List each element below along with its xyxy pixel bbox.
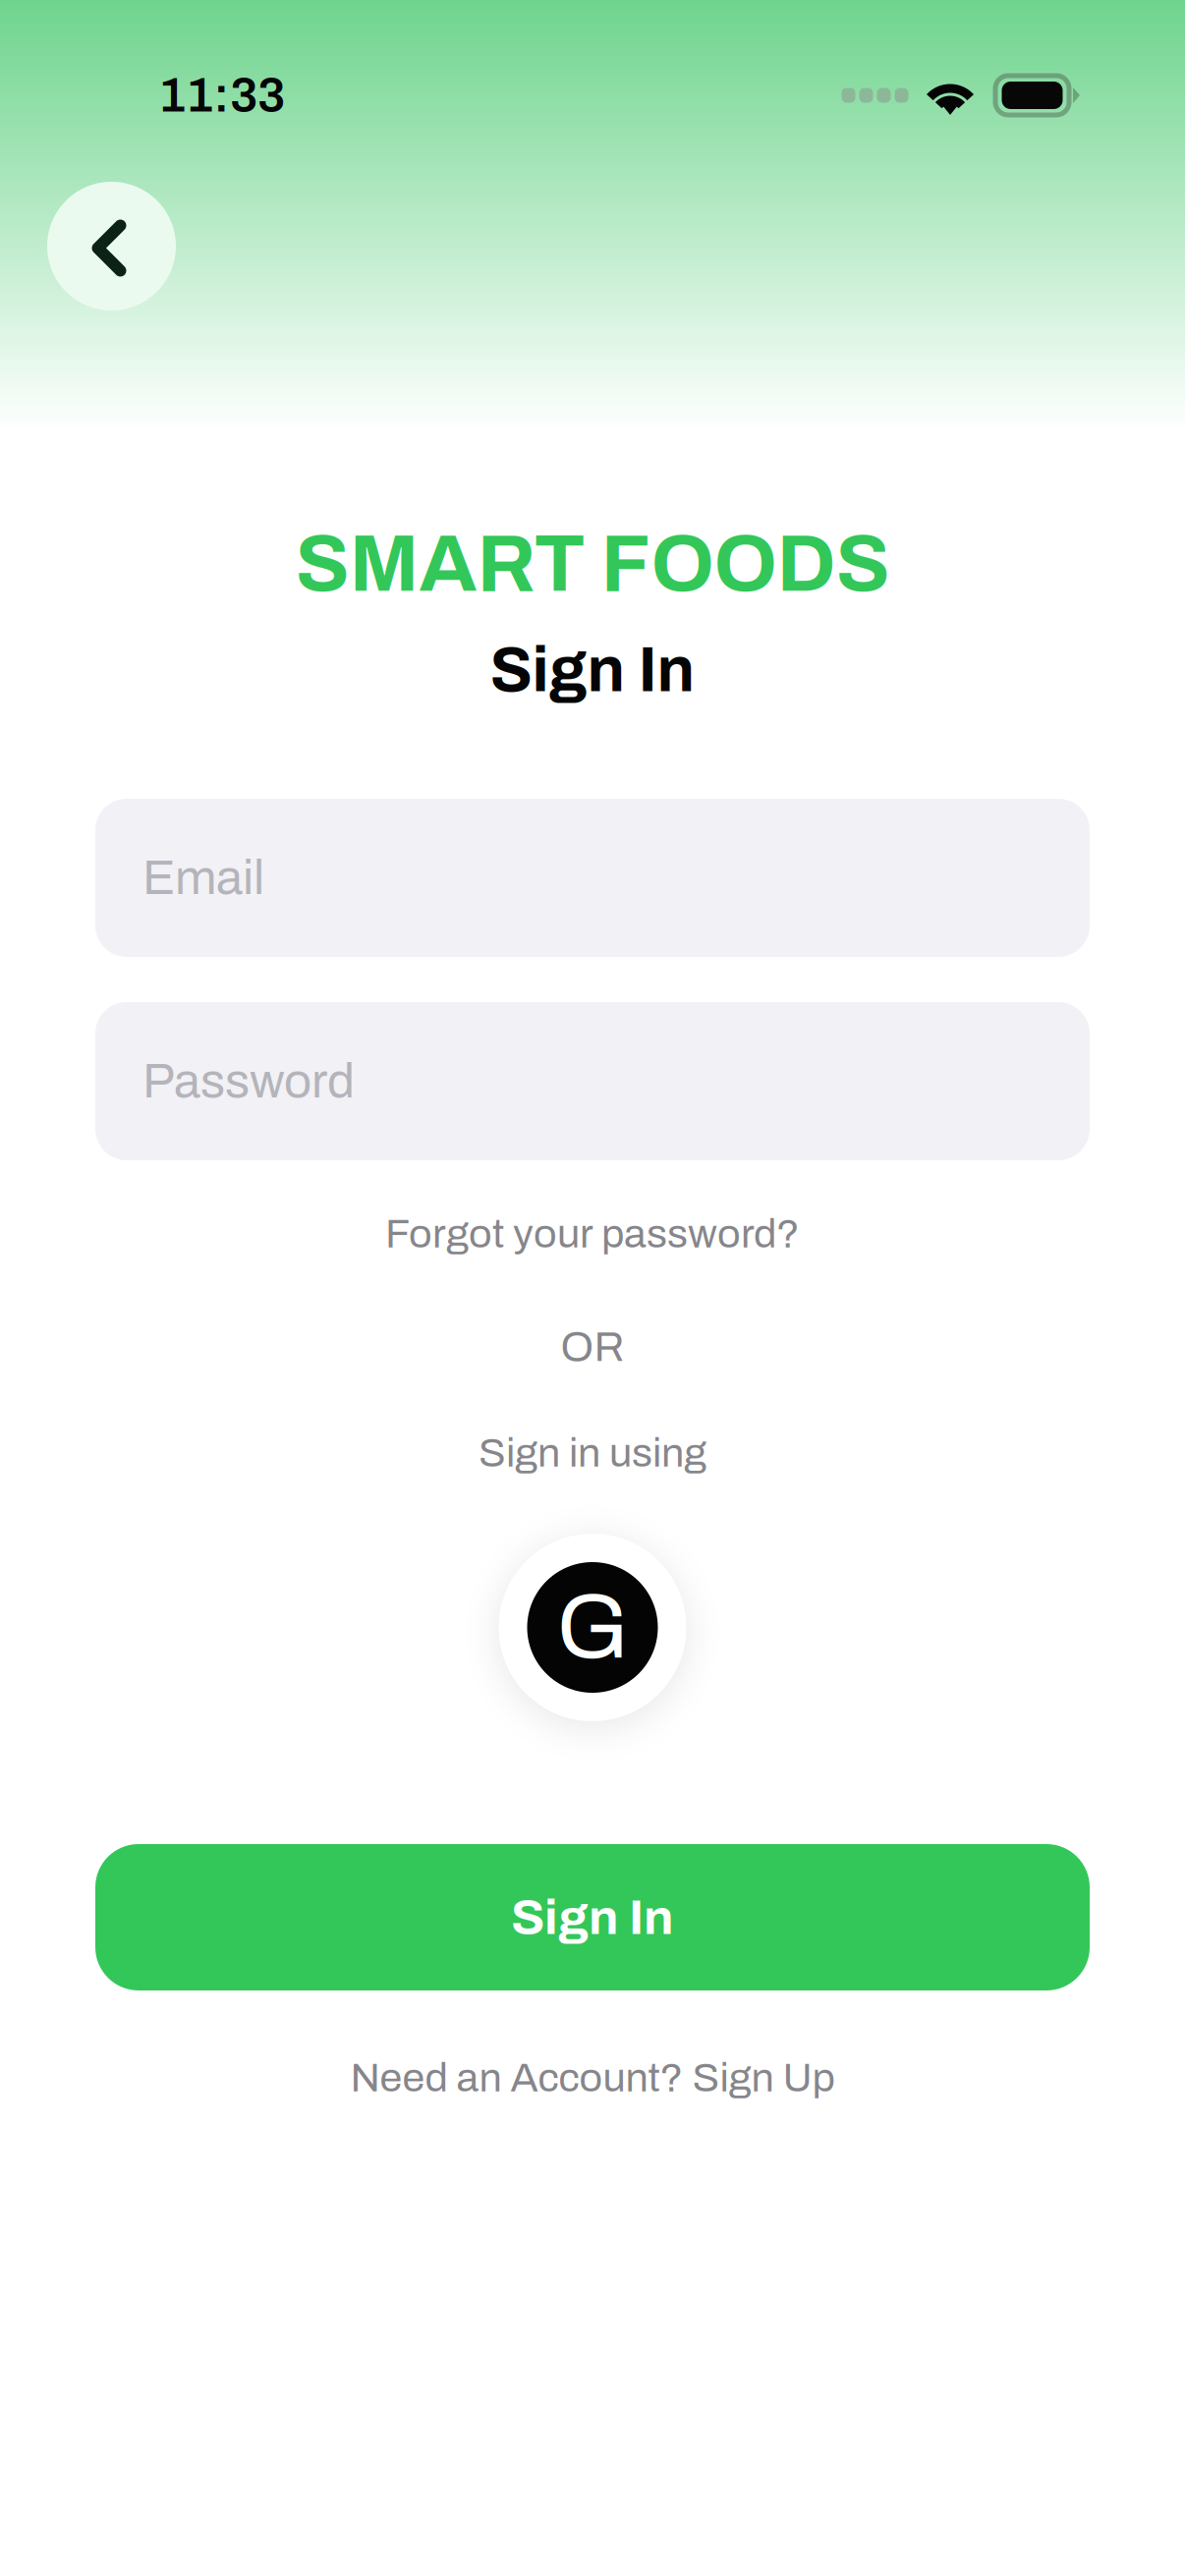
staticText: 11:33 (158, 69, 285, 122)
staticText: Sign In (490, 636, 695, 704)
staticText: G (557, 1578, 628, 1677)
button[interactable]: Sign in with Google (499, 1534, 686, 1721)
button[interactable]: Back (47, 182, 176, 310)
staticText: Forgot your password? (385, 1212, 800, 1256)
staticText: Need an Account? Sign Up (350, 2056, 835, 2100)
staticText: Password (142, 1055, 355, 1108)
button[interactable]: Forgot your password? (95, 1204, 1090, 1264)
staticText: Sign in using (479, 1431, 706, 1475)
staticText: SMART FOODS (295, 521, 890, 607)
button[interactable]: Need an Account? Sign Up (95, 2047, 1090, 2108)
staticText: Email (142, 851, 264, 904)
staticText: Sign In (511, 1890, 674, 1944)
staticText: OR (561, 1324, 624, 1370)
button[interactable]: Sign In (95, 1844, 1090, 1990)
